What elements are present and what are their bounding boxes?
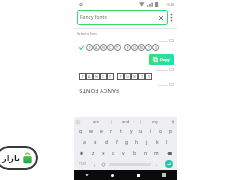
button[interactable]: Shift xyxy=(75,148,88,159)
button[interactable]: Selected xyxy=(79,44,177,51)
staticText: F xyxy=(127,45,129,50)
button[interactable]: t xyxy=(116,126,126,137)
staticText: z xyxy=(92,150,95,157)
staticText: N xyxy=(102,45,105,50)
staticText: Y xyxy=(109,74,112,79)
button[interactable]: Enter xyxy=(165,160,173,168)
staticText: FANCY FONTS xyxy=(79,87,119,95)
staticText: t xyxy=(120,128,122,135)
staticText: d xyxy=(105,139,109,146)
staticText: Download xyxy=(156,68,168,71)
staticText: F xyxy=(120,74,122,79)
button[interactable]: ?123 xyxy=(75,159,90,169)
button[interactable]: Copy xyxy=(149,54,174,65)
button[interactable]: z xyxy=(88,148,98,159)
button[interactable]: More options xyxy=(168,10,175,25)
staticText: b xyxy=(133,150,137,157)
button[interactable]: x xyxy=(98,148,108,159)
button[interactable]: y xyxy=(126,126,136,137)
button[interactable]: Keyboard xyxy=(151,170,177,180)
button[interactable]: q xyxy=(75,126,86,137)
button[interactable]: f xyxy=(112,137,122,148)
button[interactable]: r xyxy=(106,126,116,137)
staticText: r xyxy=(110,128,113,135)
staticText: h xyxy=(135,139,139,146)
staticText: T xyxy=(141,74,143,79)
staticText: g xyxy=(125,139,129,146)
staticText: C xyxy=(109,45,112,50)
staticText: c xyxy=(112,150,115,157)
button[interactable]: Emoji xyxy=(99,159,108,169)
staticText: N xyxy=(95,74,98,79)
button[interactable]: s xyxy=(90,137,101,148)
button[interactable]: v xyxy=(118,148,129,159)
staticText: Y xyxy=(116,45,119,50)
button[interactable]: o xyxy=(156,126,166,137)
staticText: . xyxy=(156,161,158,168)
button[interactable]: e xyxy=(96,126,106,137)
staticText: y xyxy=(130,128,133,135)
staticText: o xyxy=(159,128,163,135)
button[interactable]: , xyxy=(90,159,99,169)
button[interactable]: c xyxy=(108,148,118,159)
staticText: m xyxy=(154,150,159,157)
staticText: O xyxy=(133,45,136,50)
staticText: T xyxy=(148,45,150,50)
button[interactable]: Text xyxy=(77,10,168,25)
button[interactable]: k xyxy=(152,137,162,148)
staticText: are xyxy=(93,119,100,124)
staticText: x xyxy=(102,150,105,157)
staticText: A xyxy=(88,74,91,79)
button[interactable]: and xyxy=(112,117,140,126)
button[interactable]: b xyxy=(129,148,140,159)
staticText: ?123 xyxy=(79,162,86,166)
button[interactable]: i xyxy=(146,126,156,137)
button[interactable]: Voice input xyxy=(169,117,177,126)
staticText: s xyxy=(94,139,97,146)
button[interactable]: Expand suggestions xyxy=(74,117,82,126)
button[interactable]: F xyxy=(79,73,177,80)
staticText: i xyxy=(150,128,152,135)
staticText: Google xyxy=(159,39,168,42)
staticText: j xyxy=(146,139,148,146)
button[interactable]: Recents xyxy=(125,170,151,180)
button[interactable]: . xyxy=(152,159,161,169)
button[interactable]: n xyxy=(140,148,151,159)
button[interactable]: a xyxy=(79,137,90,148)
button[interactable]: g xyxy=(122,137,132,148)
button[interactable]: Home xyxy=(99,170,125,180)
button[interactable]: Clear text xyxy=(157,14,165,22)
staticText: k xyxy=(156,139,159,146)
button[interactable]: p xyxy=(166,126,176,137)
staticText: n xyxy=(144,150,148,157)
button[interactable]: FANCY FONTS xyxy=(79,86,177,95)
staticText: v xyxy=(122,150,125,157)
staticText: a xyxy=(83,139,86,146)
staticText: 10:28 xyxy=(166,3,175,7)
staticText: S xyxy=(155,45,157,50)
staticText: O xyxy=(126,74,129,79)
staticText: u xyxy=(139,128,143,135)
other: Selected xyxy=(79,45,84,50)
staticText: q xyxy=(79,128,83,135)
staticText: Copy xyxy=(160,57,170,62)
staticText: F xyxy=(89,45,91,50)
button[interactable]: Backspace xyxy=(162,148,176,159)
button[interactable]: h xyxy=(132,137,142,148)
button[interactable]: my xyxy=(141,117,169,126)
button[interactable]: l xyxy=(162,137,172,148)
staticText: e xyxy=(100,128,103,135)
button[interactable]: u xyxy=(136,126,146,137)
button[interactable]: d xyxy=(101,137,112,148)
staticText: Network xyxy=(158,83,168,86)
button[interactable]: are xyxy=(82,117,111,126)
button[interactable]: Bazaar xyxy=(0,146,38,170)
button[interactable]: m xyxy=(151,148,162,159)
staticText: Text xyxy=(82,10,87,12)
staticText: f xyxy=(116,139,118,146)
button[interactable]: j xyxy=(142,137,152,148)
button[interactable]: w xyxy=(86,126,96,137)
staticText: N xyxy=(140,45,143,50)
button[interactable]: Back xyxy=(74,170,99,180)
